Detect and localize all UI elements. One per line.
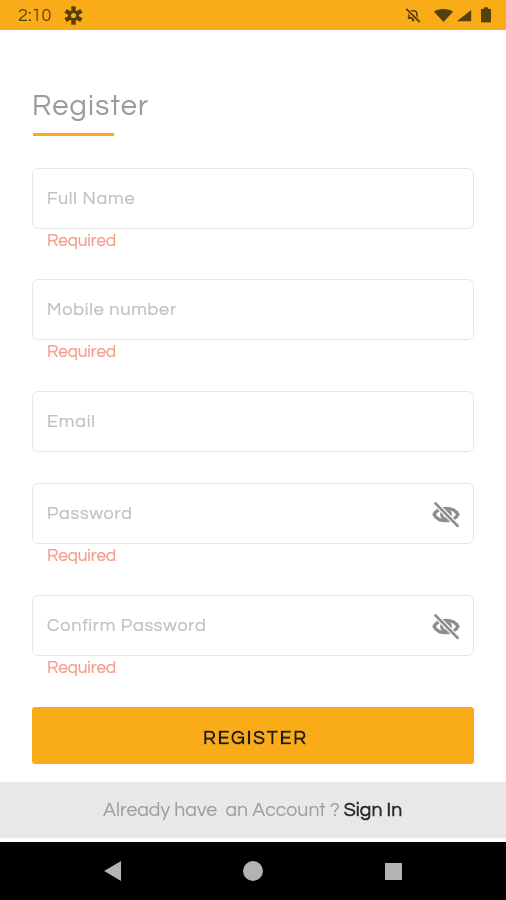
staticText: Required [47,659,117,677]
button[interactable]: Toggle password visibility [430,610,462,642]
button[interactable]: Already have an Account ? Sign In [0,782,506,838]
staticText: Already have an Account ? Sign In [103,800,403,820]
staticText: Required [47,343,117,361]
button[interactable]: Back [88,845,140,897]
staticText: REGISTER [203,728,308,748]
staticText: Required [47,547,117,565]
button[interactable]: Recent apps [367,845,419,897]
staticText: Email [47,412,96,431]
button[interactable]: Home [227,845,279,897]
button[interactable]: Toggle password visibility [430,498,462,530]
staticText: Required [47,232,117,250]
button[interactable]: Full Name [32,168,474,229]
staticText: Full Name [47,189,136,208]
staticText: Mobile number [47,300,177,319]
button[interactable]: Mobile number [32,279,474,340]
staticText: Register [32,91,150,121]
button[interactable]: Confirm Password [32,595,474,656]
staticText: 2:10 [18,6,52,25]
button[interactable]: Email [32,391,474,452]
staticText: Password [47,504,133,523]
button[interactable]: REGISTER [32,707,474,764]
button[interactable]: Password [32,483,474,544]
staticText: Confirm Password [47,616,207,635]
